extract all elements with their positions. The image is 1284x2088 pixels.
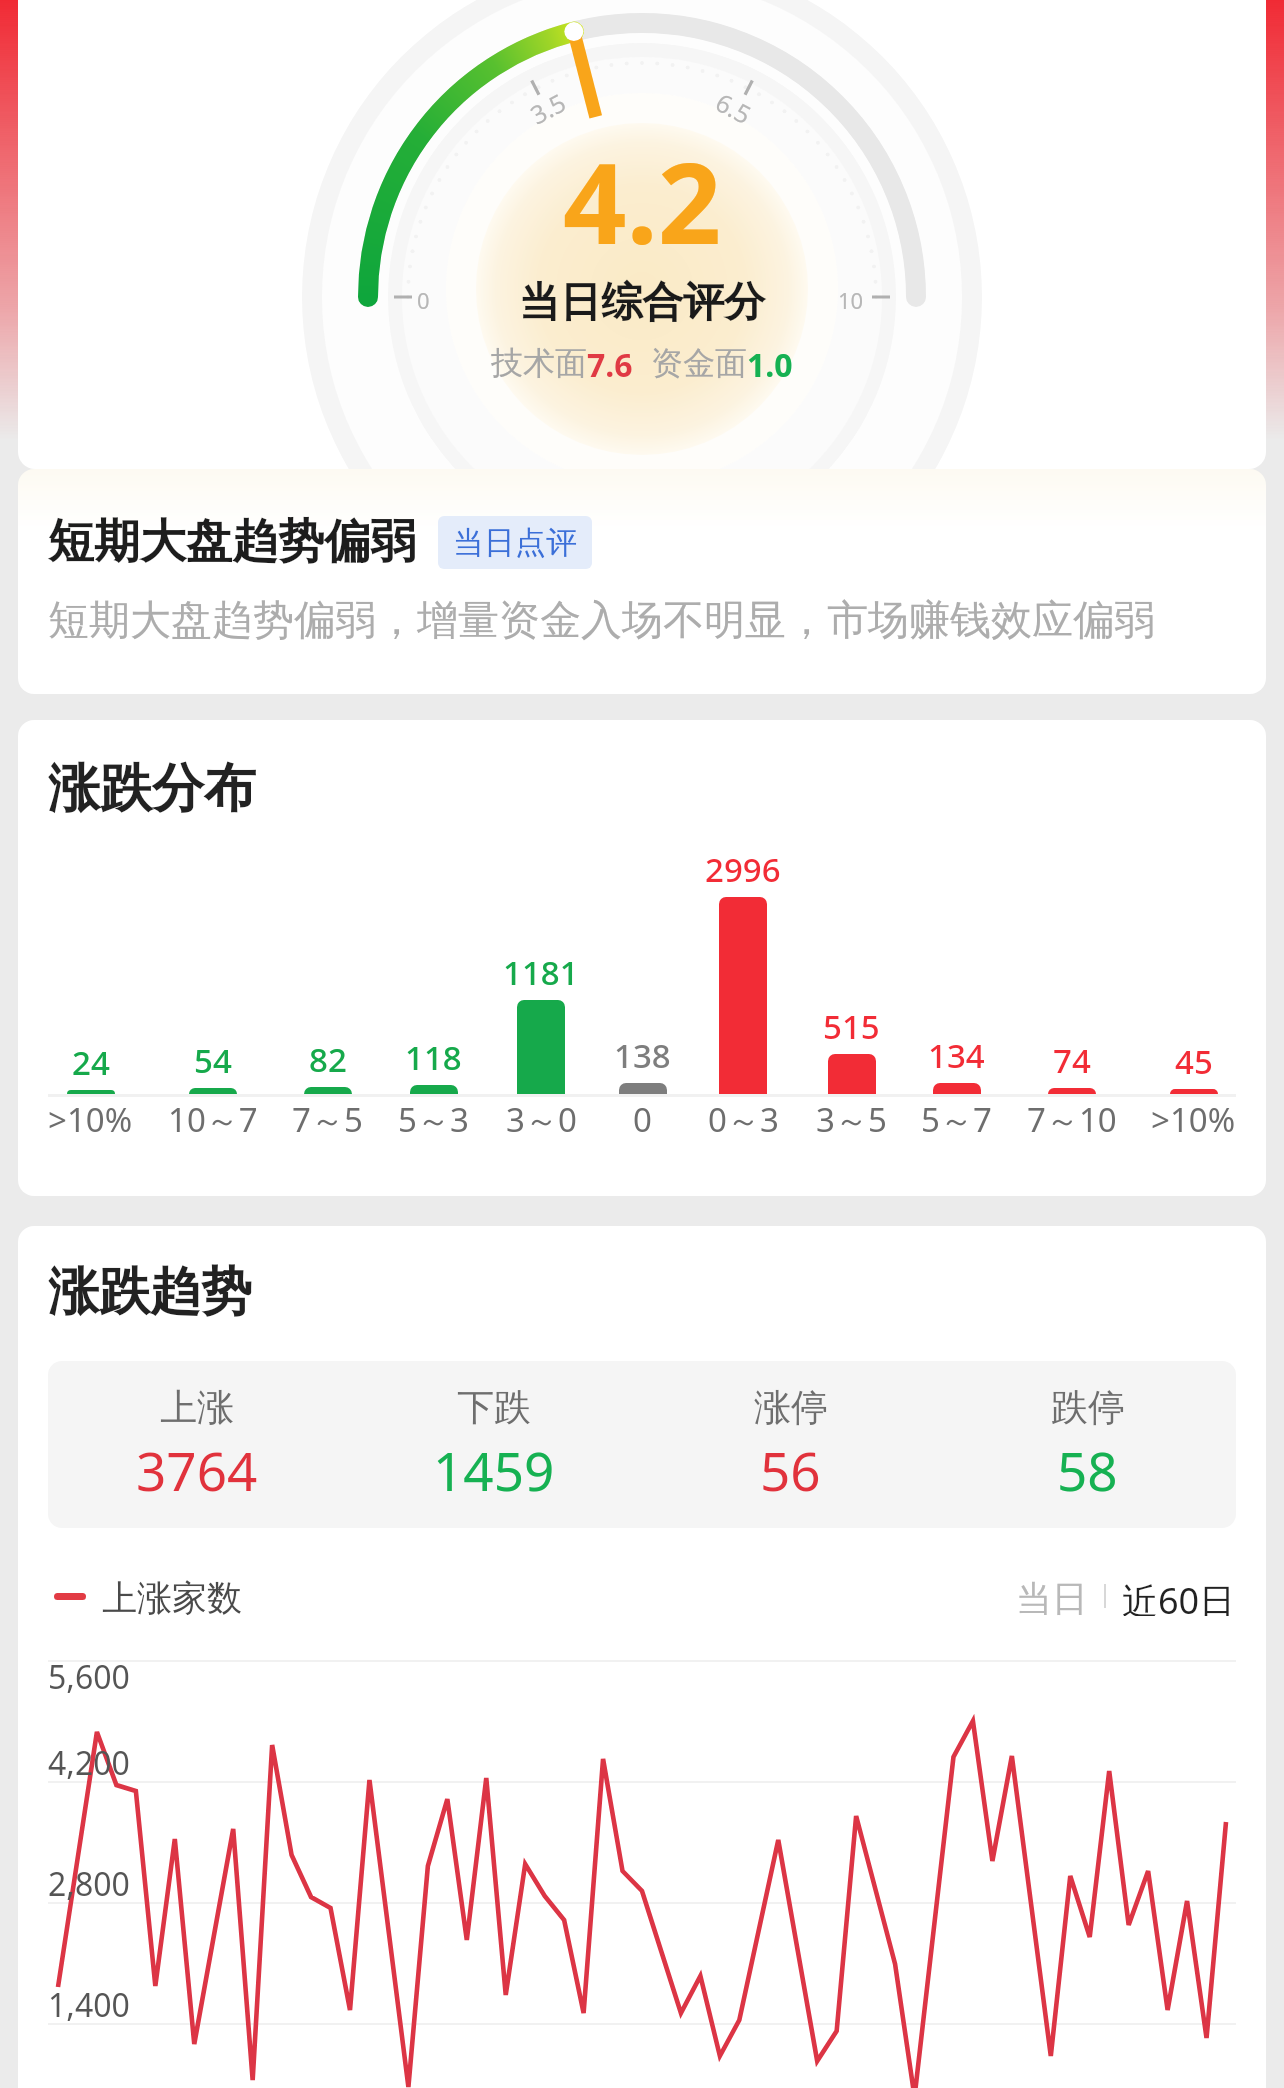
button[interactable]: 2996: [705, 720, 781, 1142]
staticText: 0: [417, 285, 430, 315]
staticText: 3764: [136, 1434, 258, 1506]
button[interactable]: 1181: [503, 720, 579, 1142]
button[interactable]: 上涨: [48, 1384, 345, 1506]
staticText: 1181: [503, 950, 579, 995]
staticText: 当日综合评分: [519, 277, 765, 329]
button[interactable]: 下跌: [345, 1384, 642, 1506]
staticText: 74: [1053, 1038, 1091, 1083]
staticText: 5～3: [398, 1097, 469, 1142]
button[interactable]: 当日综合评分 4.2: [18, 0, 1266, 469]
staticText: 4.2: [563, 125, 722, 276]
staticText: 5,600: [48, 1655, 130, 1699]
staticText: 3～5: [816, 1097, 887, 1142]
button[interactable]: 134: [921, 720, 992, 1142]
staticText: 6.5: [710, 84, 758, 131]
staticText: 58: [1057, 1434, 1118, 1506]
staticText: 上涨家数: [102, 1576, 242, 1616]
staticText: 7.6: [587, 343, 633, 387]
button[interactable]: 跌停: [939, 1384, 1236, 1506]
staticText: 5～7: [921, 1097, 992, 1142]
staticText: 4,200: [48, 1741, 130, 1785]
staticText: 1,400: [48, 1983, 130, 2027]
staticText: 短期大盘趋势偏弱: [48, 513, 416, 571]
button[interactable]: 74: [1027, 720, 1117, 1142]
staticText: 10: [838, 285, 864, 315]
staticText: >10%: [48, 1097, 133, 1142]
staticText: 24: [72, 1040, 110, 1085]
staticText: 跌停: [1051, 1384, 1125, 1431]
staticText: 下跌: [457, 1384, 531, 1431]
staticText: >10%: [1151, 1097, 1236, 1142]
staticText: 涨跌分布: [48, 756, 256, 822]
button[interactable]: 138: [614, 720, 671, 1142]
button[interactable]: 当日: [1016, 1576, 1088, 1616]
staticText: 短期大盘趋势偏弱，增量资金入场不明显，市场赚钱效应偏弱: [48, 595, 1155, 647]
button[interactable]: 45: [1151, 720, 1236, 1142]
staticText: 当日点评: [453, 523, 577, 562]
staticText: 118: [405, 1035, 462, 1080]
staticText: 54: [194, 1038, 232, 1083]
button[interactable]: 近60日: [1122, 1576, 1236, 1616]
staticText: 0～3: [708, 1097, 779, 1142]
button[interactable]: 涨停: [642, 1384, 939, 1506]
staticText: 7～5: [292, 1097, 363, 1142]
staticText: 近60日: [1122, 1576, 1236, 1616]
staticText: 资金面: [651, 343, 747, 383]
staticText: 2,800: [48, 1862, 130, 1906]
button[interactable]: 短期大盘趋势偏弱: [18, 469, 1266, 694]
staticText: 134: [928, 1033, 985, 1078]
staticText: 3～0: [506, 1097, 577, 1142]
staticText: 涨跌趋势: [48, 1260, 252, 1324]
staticText: 0: [633, 1097, 652, 1142]
staticText: 138: [614, 1033, 671, 1078]
staticText: 当日: [1016, 1576, 1088, 1616]
staticText: 1459: [433, 1434, 555, 1506]
staticText: 技术面: [491, 343, 587, 383]
staticText: 涨停: [754, 1384, 828, 1431]
staticText: 515: [823, 1004, 880, 1049]
button[interactable]: 118: [398, 720, 469, 1142]
staticText: 7～10: [1027, 1097, 1117, 1142]
staticText: 56: [760, 1434, 821, 1506]
staticText: 3.5: [524, 84, 572, 131]
staticText: 45: [1175, 1039, 1213, 1084]
button[interactable]: 515: [816, 720, 887, 1142]
staticText: 1.0: [747, 343, 793, 387]
staticText: 10～7: [168, 1097, 258, 1142]
staticText: 2996: [705, 847, 781, 892]
staticText: 上涨: [160, 1384, 234, 1431]
button[interactable]: 24: [48, 720, 133, 1142]
button[interactable]: 82: [292, 720, 363, 1142]
staticText: 82: [309, 1037, 347, 1082]
button[interactable]: 54: [168, 720, 258, 1142]
